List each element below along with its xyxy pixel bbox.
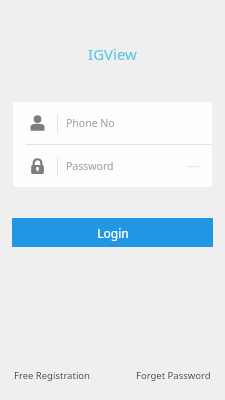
staticText: Password	[66, 159, 114, 173]
staticText: Phone No	[66, 116, 115, 130]
other: User	[26, 112, 48, 134]
button[interactable]: User	[13, 102, 212, 144]
button[interactable]: Login	[12, 218, 213, 247]
button[interactable]: Password	[13, 145, 212, 187]
button[interactable]: Free Registration	[13, 366, 91, 385]
button[interactable]: Forget Password	[135, 366, 212, 385]
staticText: IGView	[88, 44, 137, 64]
staticText: Forget Password	[136, 369, 211, 382]
other: Password	[26, 155, 48, 177]
staticText: Free Registration	[14, 369, 90, 382]
staticText: Login	[97, 225, 129, 241]
button[interactable]: Show password	[184, 157, 202, 175]
